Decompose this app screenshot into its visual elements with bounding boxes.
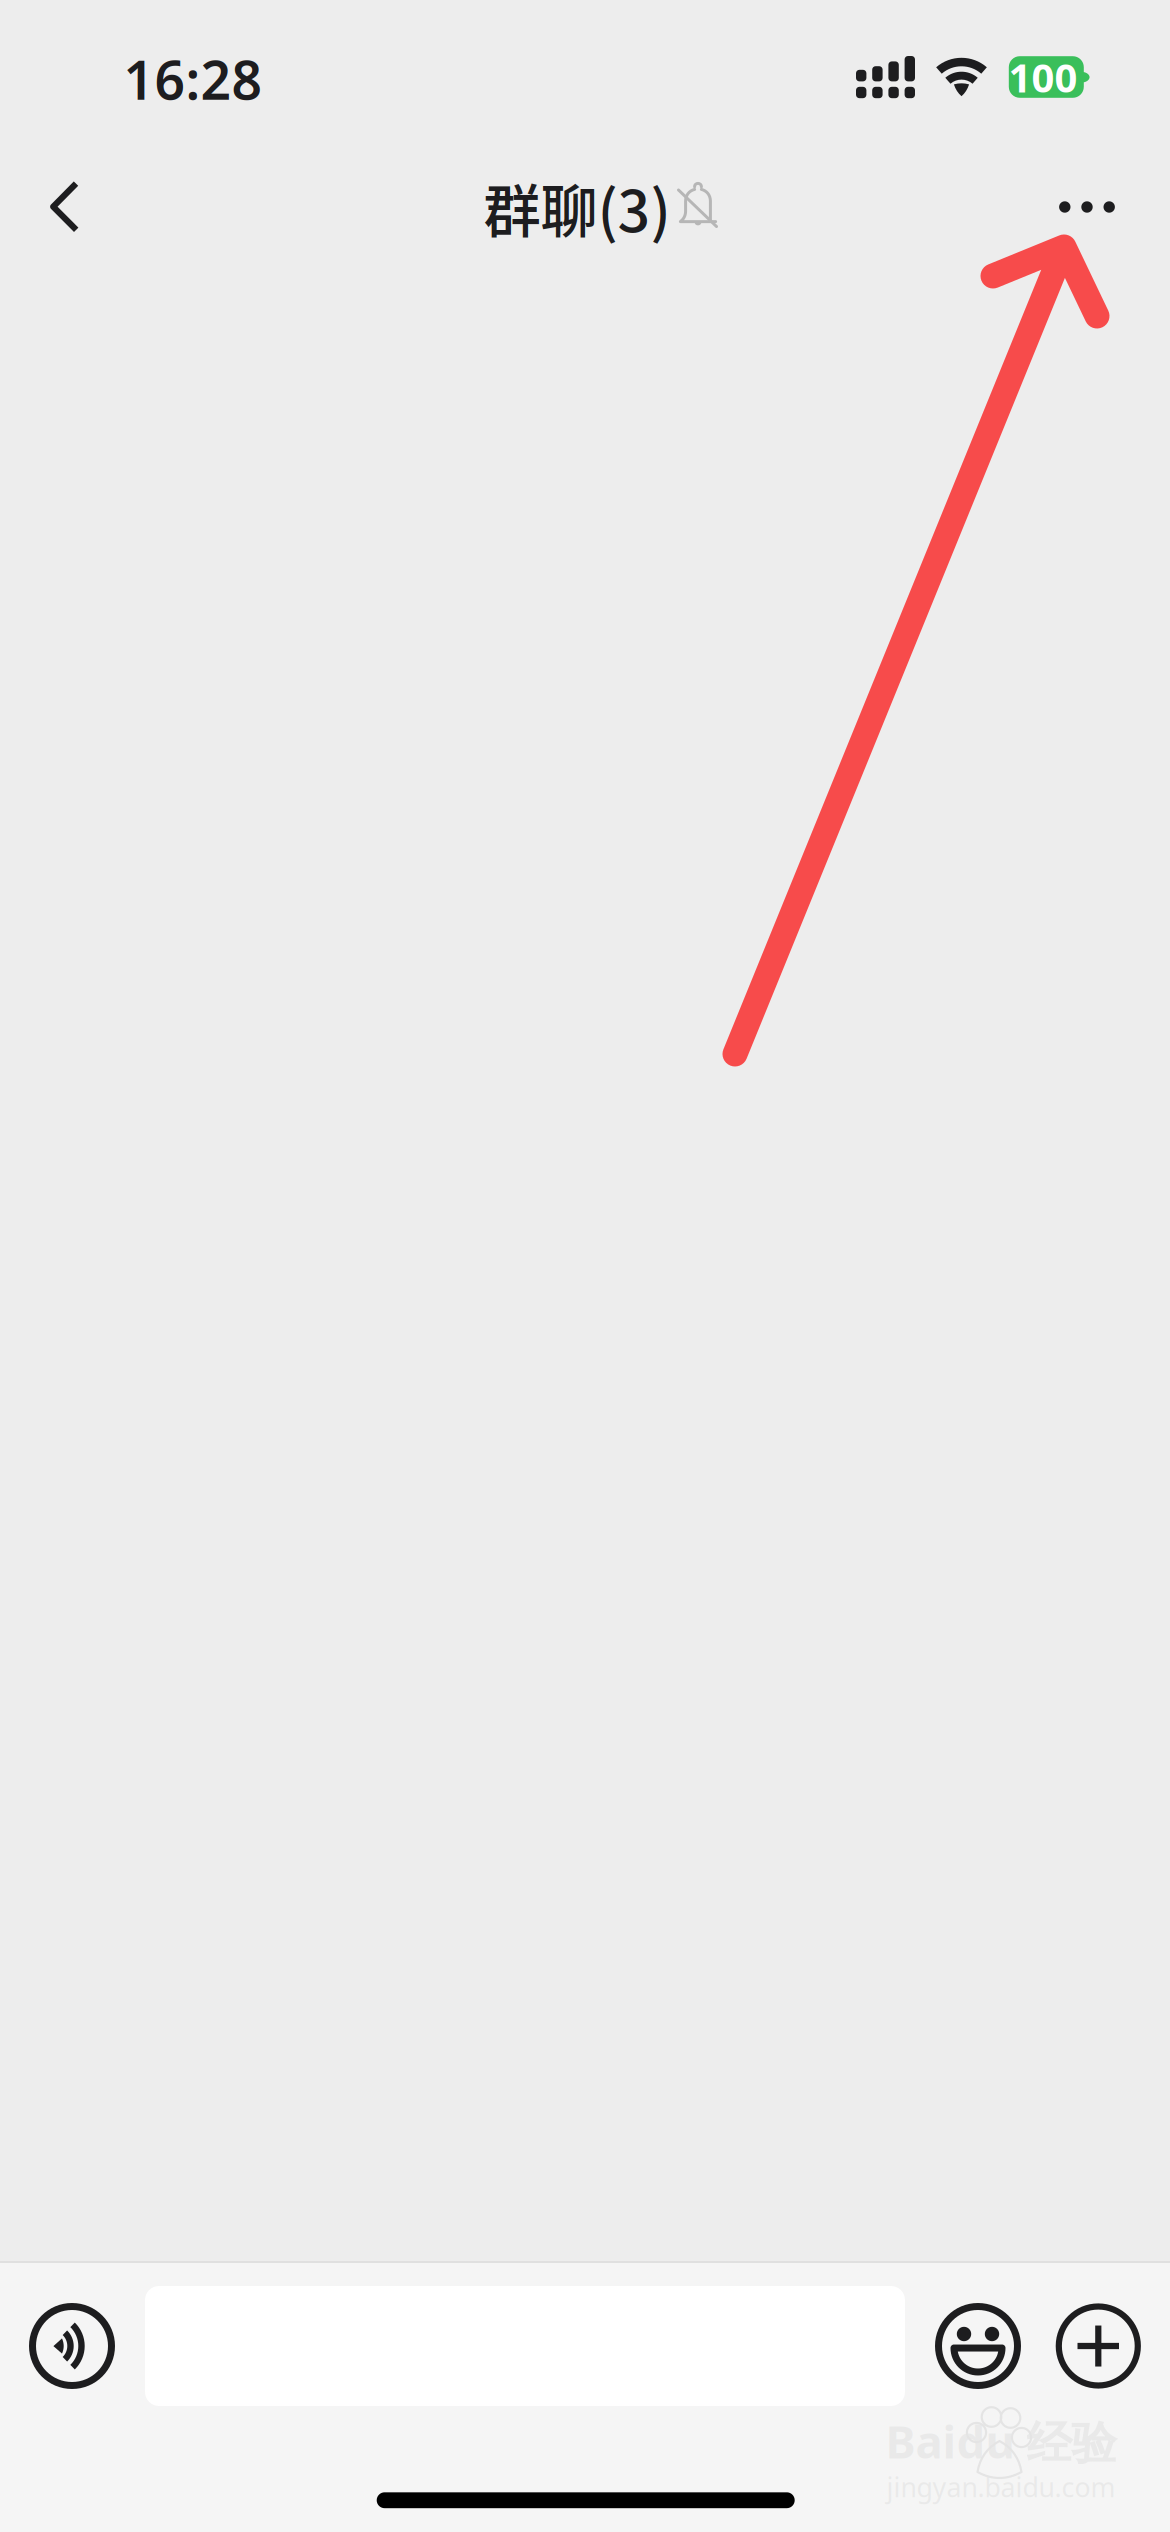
button[interactable]: More options — [1035, 155, 1139, 259]
staticText: 100 — [1008, 50, 1077, 103]
staticText: jingyan.baidu.com — [886, 2469, 1115, 2505]
button[interactable]: Emoji keyboard — [928, 2296, 1028, 2396]
button[interactable]: Group chat title — [470, 167, 730, 247]
staticText: 16:28 — [123, 44, 262, 114]
button[interactable]: Back — [12, 155, 116, 259]
button[interactable]: Voice message — [22, 2296, 122, 2396]
button[interactable]: More functions — [1048, 2296, 1148, 2396]
staticText: 群聊(3) — [483, 165, 670, 248]
staticText: Baidu 经验 — [885, 2411, 1116, 2471]
